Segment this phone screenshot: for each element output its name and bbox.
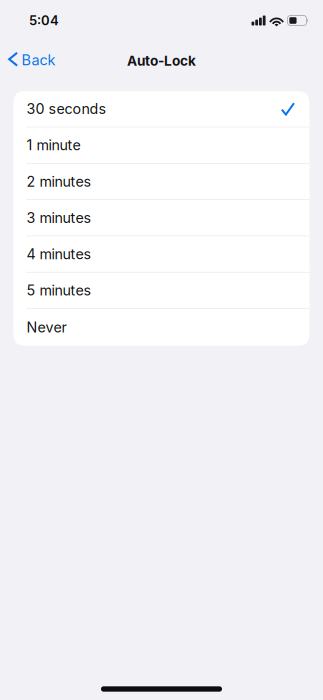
button[interactable]: 3 minutes	[13, 200, 309, 236]
button[interactable]: Back	[0, 44, 65, 76]
staticText: 5:04	[29, 13, 59, 28]
button[interactable]: 4 minutes	[13, 236, 309, 272]
button[interactable]: 30 seconds	[13, 91, 309, 127]
staticText: Back	[21, 51, 55, 69]
button[interactable]: 1 minute	[13, 127, 309, 164]
button[interactable]: 2 minutes	[13, 164, 309, 200]
staticText: Never	[26, 319, 66, 336]
staticText: 4 minutes	[26, 245, 91, 263]
button[interactable]: 5 minutes	[13, 272, 309, 309]
staticText: 3 minutes	[26, 209, 91, 226]
staticText: 2 minutes	[26, 173, 91, 190]
staticText: Auto-Lock	[127, 53, 196, 69]
staticText: 5 minutes	[26, 282, 91, 299]
staticText: 30 seconds	[26, 100, 106, 117]
staticText: 1 minute	[26, 136, 80, 154]
button[interactable]: Never	[13, 309, 309, 346]
